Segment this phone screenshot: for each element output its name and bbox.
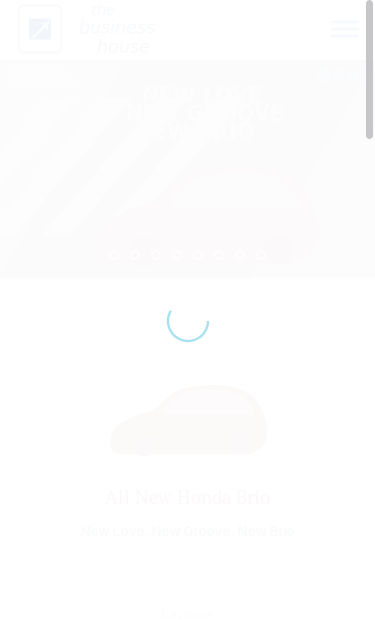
staticText: BRIO (316, 64, 370, 87)
button[interactable]: Open menu (322, 7, 368, 51)
